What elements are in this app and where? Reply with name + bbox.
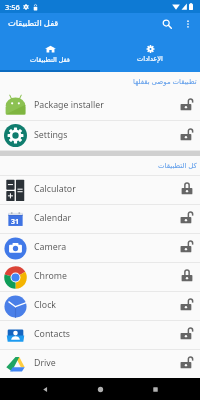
button[interactable]: Recents: [145, 379, 165, 399]
button[interactable]: Lock Camera: [176, 237, 198, 259]
button[interactable]: Lock Contacts: [176, 324, 198, 346]
button[interactable]: Settings: [0, 121, 200, 150]
button[interactable]: Package installer: [0, 91, 200, 120]
staticText: تطبيقات موصى بقفلها: [133, 77, 197, 87]
button[interactable]: Back: [35, 379, 55, 399]
staticText: Settings: [34, 129, 68, 141]
button[interactable]: Camera: [0, 234, 200, 262]
staticText: Drive: [34, 357, 56, 369]
staticText: Clock: [34, 299, 57, 311]
button[interactable]: Lock Settings: [176, 125, 198, 147]
staticText: Calculator: [34, 183, 76, 195]
button[interactable]: Drive: [0, 350, 200, 378]
button[interactable]: Chrome: [0, 263, 200, 291]
staticText: Package installer: [34, 99, 104, 111]
button[interactable]: Unlock Chrome: [176, 266, 198, 288]
button[interactable]: 31: [0, 205, 200, 233]
staticText: Contacts: [34, 328, 71, 340]
button[interactable]: Lock Clock: [176, 295, 198, 317]
button[interactable]: Clock: [0, 292, 200, 320]
button[interactable]: Lock Drive: [176, 353, 198, 375]
button[interactable]: Search: [156, 13, 177, 34]
staticText: الإعدادات: [137, 55, 163, 63]
button[interactable]: الإعدادات: [100, 34, 200, 70]
staticText: 3:56: [5, 2, 20, 12]
button[interactable]: Contacts: [0, 321, 200, 349]
staticText: 31: [11, 217, 20, 227]
button[interactable]: Calculator: [0, 176, 200, 204]
staticText: Calendar: [34, 212, 72, 224]
staticText: قفل التطبيقات: [30, 55, 70, 64]
button[interactable]: Lock Package installer: [176, 95, 198, 117]
staticText: كل التطبيقات: [158, 161, 197, 171]
staticText: Chrome: [34, 270, 67, 282]
button[interactable]: Lock Calendar: [176, 208, 198, 230]
button[interactable]: Unlock Calculator: [176, 179, 198, 201]
button[interactable]: Home: [90, 379, 110, 399]
button[interactable]: More options: [177, 13, 198, 34]
staticText: Camera: [34, 241, 67, 253]
staticText: قفل التطبيقات: [8, 17, 59, 28]
button[interactable]: قفل التطبيقات: [0, 34, 100, 70]
